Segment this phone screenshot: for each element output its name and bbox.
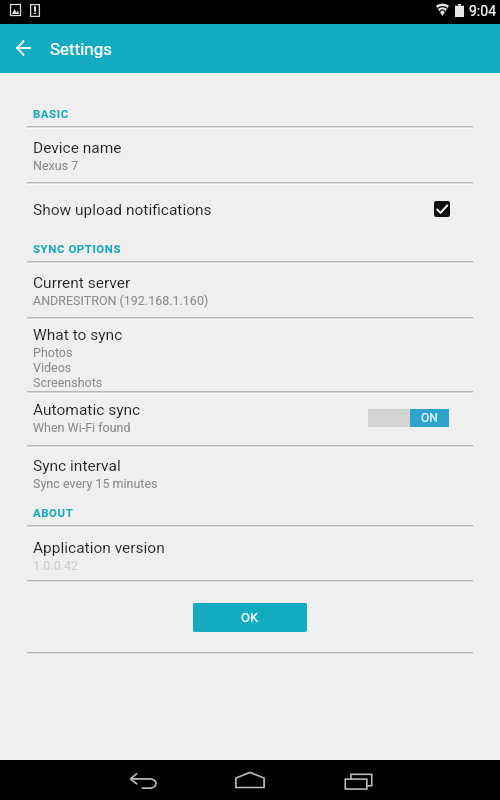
staticText: Sync every 15 minutes	[33, 476, 158, 491]
button[interactable]: Home	[205, 760, 295, 800]
staticText: Device name	[33, 139, 122, 157]
button[interactable]: OK	[193, 603, 307, 632]
button[interactable]: Device name	[0, 126, 500, 181]
staticText: Show upload notifications	[33, 201, 212, 219]
staticText: Current server	[33, 274, 131, 292]
staticText: 9:04	[469, 3, 496, 19]
button[interactable]: Automatic sync	[368, 409, 449, 427]
staticText: Automatic sync	[33, 401, 141, 419]
button[interactable]: Current server	[0, 261, 500, 316]
staticText: SYNC OPTIONS	[33, 242, 122, 255]
button[interactable]: Show upload notifications	[0, 182, 500, 236]
button[interactable]: What to sync	[0, 317, 500, 390]
staticText: When Wi-Fi found	[33, 420, 131, 435]
staticText: What to sync	[33, 326, 123, 344]
button[interactable]: Sync interval	[0, 445, 500, 500]
button[interactable]: Application version	[0, 525, 500, 579]
button[interactable]: Navigate up	[0, 24, 44, 73]
staticText: BASIC	[33, 107, 69, 120]
staticText: Photos Videos Screenshots	[33, 345, 103, 390]
staticText: Application version	[33, 539, 165, 557]
button[interactable]: Recent apps	[313, 762, 403, 800]
button[interactable]: Show upload notifications	[430, 197, 454, 221]
staticText: ABOUT	[33, 506, 74, 519]
staticText: Nexus 7	[33, 158, 79, 173]
button[interactable]: Back	[98, 760, 188, 800]
staticText: OK	[241, 610, 259, 625]
staticText: Settings	[50, 39, 113, 59]
staticText: ON	[421, 411, 438, 425]
staticText: ANDRESITRON (192.168.1.160)	[33, 293, 209, 308]
button[interactable]: Automatic sync	[0, 391, 500, 444]
staticText: Sync interval	[33, 457, 121, 475]
staticText: 1.0.0.42	[33, 558, 79, 573]
